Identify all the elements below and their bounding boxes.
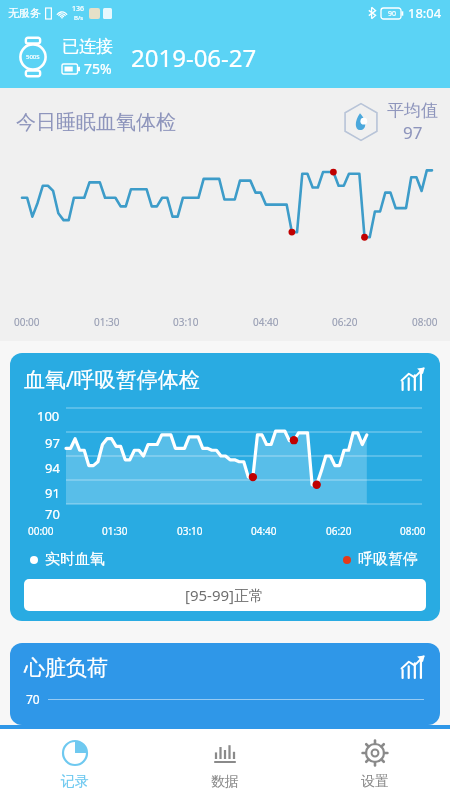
staticText: 91: [45, 484, 60, 502]
button[interactable]: Trend chart: [400, 367, 426, 393]
staticText: 90: [388, 9, 397, 19]
staticText: 呼吸暂停: [358, 550, 418, 569]
staticText: 血氧/呼吸暂停体检: [24, 365, 200, 394]
staticText: 08:00: [400, 524, 426, 538]
staticText: 18:04: [408, 4, 442, 22]
staticText: 2019-06-27: [131, 41, 257, 74]
staticText: 00:00: [28, 524, 54, 538]
staticText: 500S: [26, 53, 40, 61]
button[interactable]: 记录: [0, 729, 150, 800]
staticText: 心脏负荷: [24, 655, 108, 681]
staticText: [95-99]正常: [185, 585, 265, 605]
staticText: B/s: [74, 14, 84, 22]
staticText: 03:10: [177, 524, 203, 538]
staticText: 已连接: [62, 36, 113, 57]
staticText: 记录: [61, 773, 89, 791]
button[interactable]: 血氧/呼吸暂停体检: [10, 353, 440, 621]
staticText: 无服务: [8, 6, 41, 20]
staticText: 实时血氧: [45, 550, 105, 569]
staticText: 97: [403, 121, 423, 144]
staticText: 00:00: [14, 315, 40, 329]
staticText: 06:20: [326, 524, 352, 538]
staticText: 75%: [84, 59, 112, 78]
staticText: 100: [37, 407, 60, 425]
staticText: 03:10: [173, 315, 199, 329]
button[interactable]: 设置: [300, 729, 450, 800]
staticText: 04:40: [251, 524, 277, 538]
staticText: 04:40: [253, 315, 279, 329]
staticText: 70: [45, 505, 60, 522]
button[interactable]: 数据: [150, 729, 300, 800]
staticText: 01:30: [94, 315, 120, 329]
staticText: 08:00: [412, 315, 438, 329]
button[interactable]: 心脏负荷: [10, 643, 440, 725]
staticText: 01:30: [102, 524, 128, 538]
staticText: 94: [45, 459, 60, 477]
staticText: 今日睡眠血氧体检: [16, 110, 176, 135]
staticText: 136: [72, 4, 85, 14]
button[interactable]: [95-99]正常: [24, 579, 426, 611]
staticText: 设置: [361, 773, 389, 791]
button[interactable]: Trend chart: [400, 655, 426, 681]
staticText: 平均值: [387, 100, 438, 121]
staticText: 70: [26, 691, 40, 707]
staticText: 数据: [211, 773, 239, 791]
staticText: 06:20: [332, 315, 358, 329]
staticText: 97: [45, 434, 60, 452]
